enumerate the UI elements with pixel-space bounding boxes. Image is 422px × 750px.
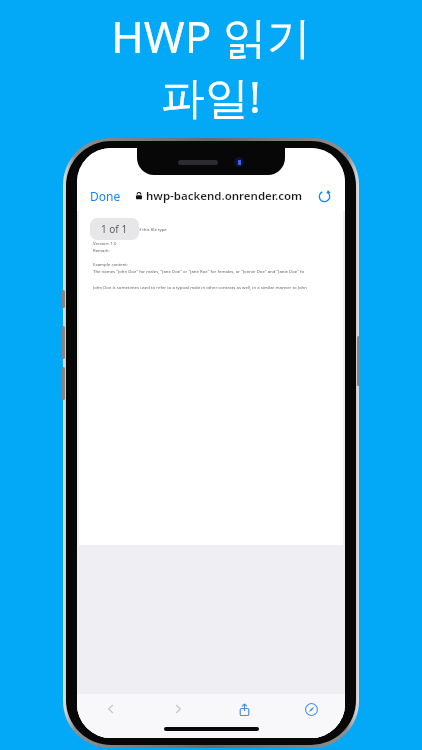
staticText: The names "John Doe" for males, "Jane Do… [93,268,305,274]
staticText: HWP 읽기 [111,6,311,66]
staticText: 1 of 1 [101,222,128,236]
staticText: John Doe is sometimes used to refer to a… [93,284,307,290]
staticText: Remark: [93,247,110,253]
button[interactable]: Back [77,694,144,724]
staticText: example of this file type [93,226,167,232]
staticText: Done [90,188,121,204]
button[interactable]: 1 of 1 [90,218,139,240]
staticText: Example content: [93,261,129,267]
staticText: Version: 1.0 [93,240,117,246]
button[interactable]: Share [211,694,278,724]
button[interactable]: Reload [314,186,334,206]
staticText: 파일! [161,66,261,126]
button[interactable]: Forward [144,694,211,724]
staticText: hwp-backend.onrender.com [146,188,303,204]
button[interactable]: Safari [278,694,345,724]
button[interactable]: Done [88,186,123,206]
button[interactable]: hwp-backend.onrender.com [133,186,305,206]
